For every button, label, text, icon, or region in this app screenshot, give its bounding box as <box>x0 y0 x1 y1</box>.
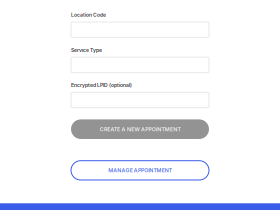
button[interactable]: Service Type <box>71 57 209 73</box>
staticText: MANAGE APPOINTMENT <box>108 167 172 174</box>
staticText: Location Code <box>71 12 106 18</box>
button[interactable]: Location Code <box>71 22 209 37</box>
button[interactable]: MANAGE APPOINTMENT <box>71 161 209 180</box>
button[interactable]: CREATE A NEW APPOINTMENT <box>71 119 209 139</box>
staticText: Encrypted LPID (optional) <box>71 82 132 88</box>
staticText: Service Type <box>71 47 102 53</box>
button[interactable]: Encrypted LPID (optional) <box>71 92 209 108</box>
staticText: CREATE A NEW APPOINTMENT <box>100 126 180 132</box>
